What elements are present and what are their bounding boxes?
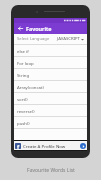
- staticText: Create A Profile Now: [23, 143, 66, 149]
- button[interactable]: Select Language: [14, 34, 87, 44]
- button[interactable]: sort(): [14, 93, 87, 104]
- button[interactable]: f: [14, 141, 87, 150]
- button[interactable]: else if: [14, 45, 87, 56]
- staticText: else if: [17, 48, 29, 54]
- staticText: JAVASCRIPT: [57, 36, 80, 42]
- staticText: For loop: [17, 60, 34, 66]
- button[interactable]: push(): [14, 117, 87, 128]
- staticText: Favourite Words List: [27, 167, 75, 174]
- staticText: sort(): [17, 96, 28, 102]
- button[interactable]: Open advertisement: [80, 143, 86, 149]
- staticText: Select Language: [17, 36, 50, 42]
- staticText: push(): [17, 120, 30, 126]
- staticText: f: [17, 143, 20, 149]
- staticText: String: [17, 72, 30, 78]
- button[interactable]: reverse(): [14, 105, 87, 116]
- staticText: Array(concat): [17, 84, 44, 90]
- staticText: reverse(): [17, 108, 35, 114]
- button[interactable]: Array(concat): [14, 81, 87, 92]
- button[interactable]: String: [14, 69, 87, 80]
- button[interactable]: For loop: [14, 57, 87, 68]
- button[interactable]: Back: [14, 23, 26, 34]
- staticText: Favourite: [26, 25, 52, 32]
